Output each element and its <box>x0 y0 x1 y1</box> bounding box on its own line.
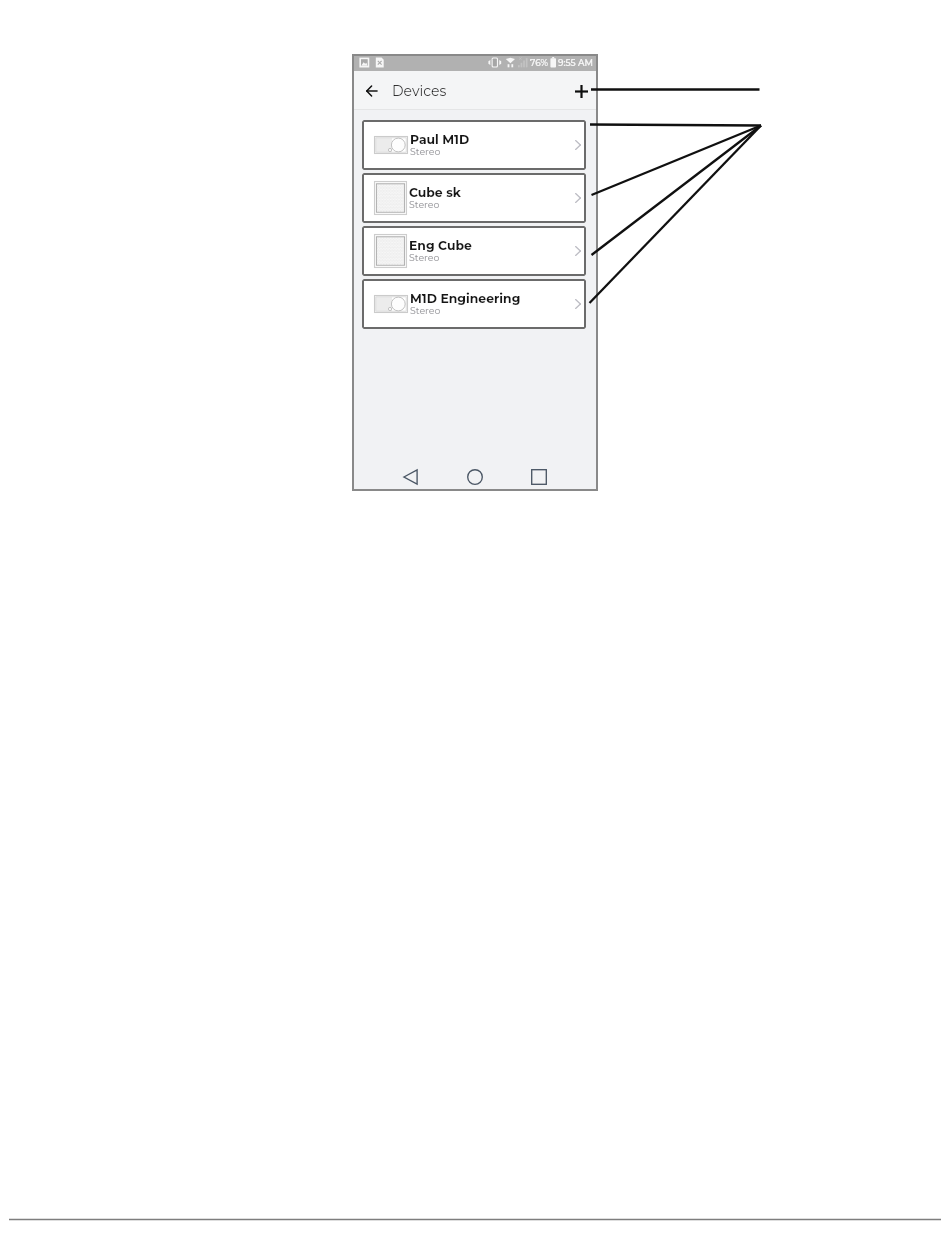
staticText: Cube sk <box>409 185 461 200</box>
staticText: Paul M1D <box>410 132 470 147</box>
button[interactable]: Home <box>462 467 488 487</box>
staticText: Stereo <box>409 199 440 210</box>
button[interactable]: Cube sk <box>362 173 586 223</box>
button[interactable]: Back <box>397 467 423 487</box>
staticText: Stereo <box>410 305 441 316</box>
button[interactable]: M1D Engineering <box>362 279 586 329</box>
button[interactable]: Add device <box>566 76 596 106</box>
button[interactable]: Recent apps <box>526 467 552 487</box>
staticText: Devices <box>392 82 447 99</box>
staticText: Stereo <box>410 146 441 157</box>
staticText: Eng Cube <box>409 238 472 253</box>
staticText: 76% <box>530 57 548 68</box>
button[interactable]: Eng Cube <box>362 226 586 276</box>
button[interactable]: Back <box>356 75 387 106</box>
staticText: Stereo <box>409 252 440 263</box>
staticText: M1D Engineering <box>410 291 521 306</box>
button[interactable]: Paul M1D <box>362 120 586 170</box>
staticText: 9:55 AM <box>558 57 594 68</box>
